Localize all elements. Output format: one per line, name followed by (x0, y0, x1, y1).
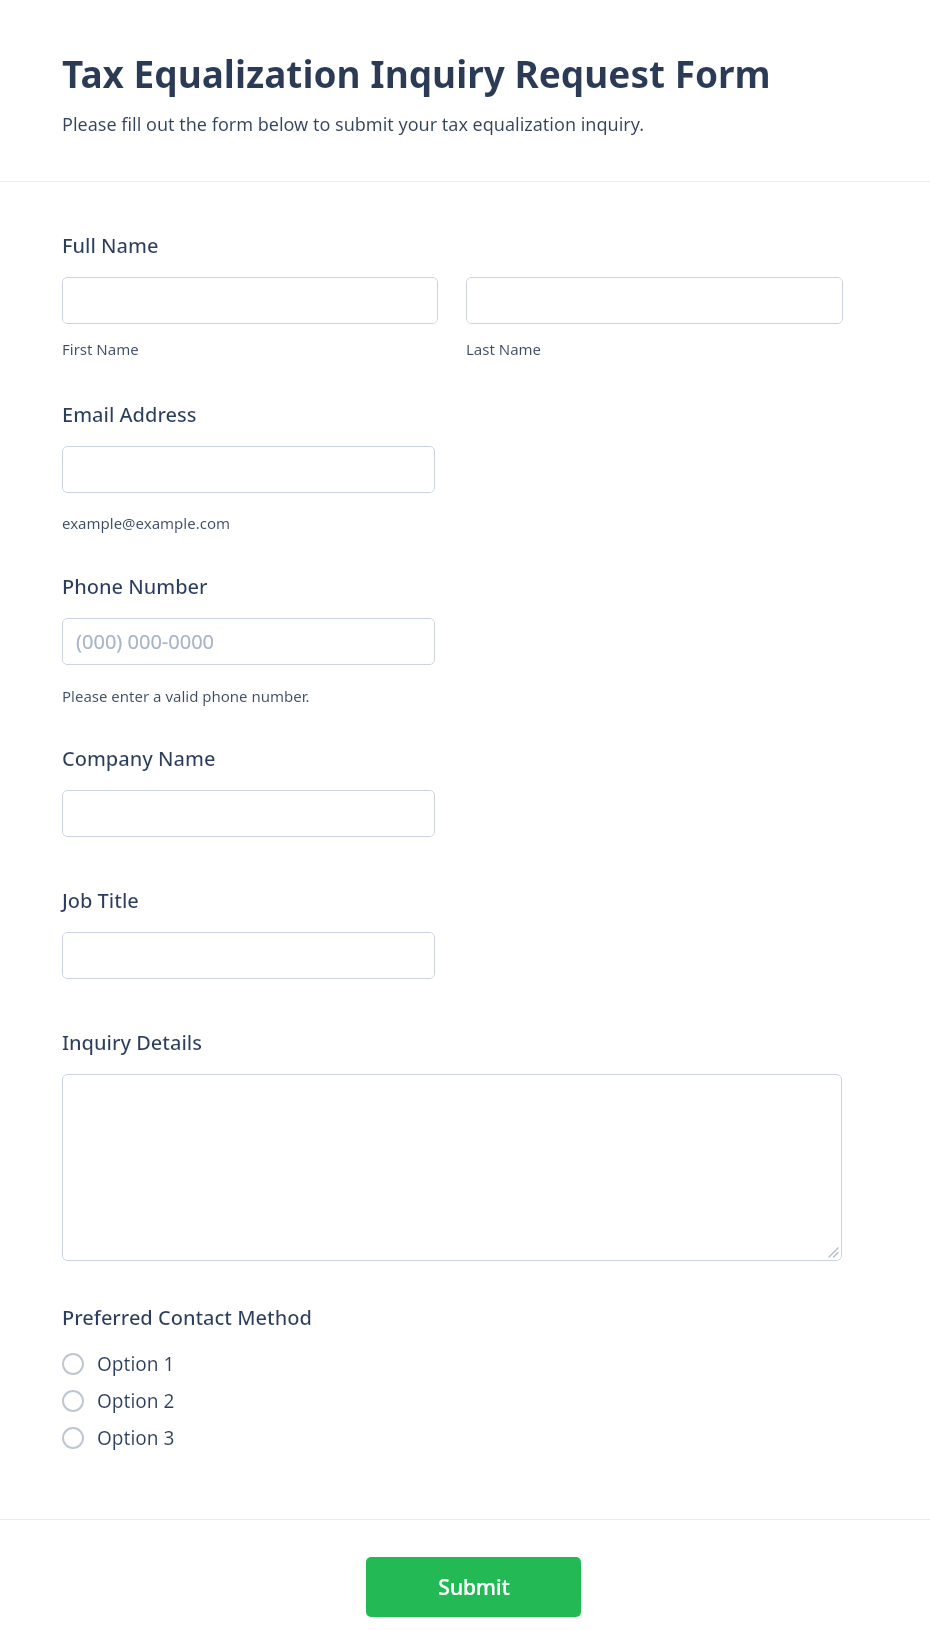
staticText: Preferred Contact Method (62, 1304, 312, 1331)
button[interactable]: Option 3 (0, 1419, 930, 1456)
staticText: Last Name (466, 339, 542, 359)
staticText: example@example.com (62, 513, 230, 533)
button[interactable]: Option 1 (0, 1345, 930, 1382)
staticText: First Name (62, 339, 139, 359)
staticText: Phone Number (62, 573, 208, 600)
button[interactable] (62, 446, 435, 493)
staticText: Full Name (62, 232, 159, 259)
button[interactable]: Option 2 (0, 1382, 930, 1419)
staticText: Option 3 (97, 1425, 175, 1451)
button[interactable]: (000) 000-0000 (62, 618, 435, 665)
staticText: Company Name (62, 745, 216, 772)
button[interactable] (62, 1074, 842, 1261)
button[interactable] (466, 277, 843, 324)
staticText: Submit (438, 1573, 510, 1602)
button[interactable] (62, 277, 438, 324)
button[interactable] (62, 790, 435, 837)
staticText: Option 2 (97, 1388, 175, 1414)
staticText: (000) 000-0000 (76, 628, 215, 655)
staticText: Option 1 (97, 1351, 175, 1377)
staticText: Email Address (62, 401, 197, 428)
staticText: Tax Equalization Inquiry Request Form (62, 48, 771, 98)
staticText: Inquiry Details (62, 1029, 202, 1056)
staticText: Job Title (62, 887, 139, 914)
button[interactable]: Submit (366, 1557, 581, 1617)
button[interactable] (62, 932, 435, 979)
staticText: Please fill out the form below to submit… (62, 112, 645, 137)
staticText: Please enter a valid phone number. (62, 686, 310, 706)
